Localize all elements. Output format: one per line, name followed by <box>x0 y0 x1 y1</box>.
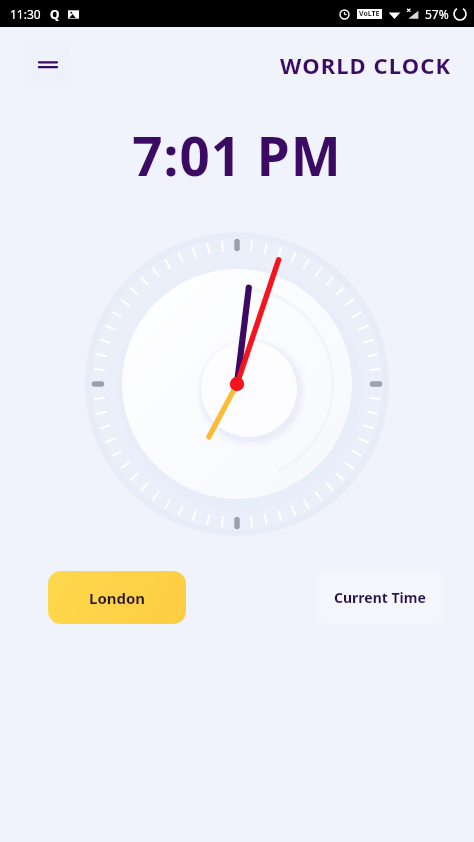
staticText: VoLTE <box>359 9 380 19</box>
button[interactable]: London <box>48 571 186 624</box>
staticText: 11:30 <box>10 6 41 22</box>
staticText: Current Time <box>334 588 426 607</box>
staticText: 7:01 PM <box>0 119 474 191</box>
button[interactable]: Menu <box>25 42 71 88</box>
staticText: 57% <box>425 6 449 22</box>
staticText: London <box>89 588 146 608</box>
staticText: WORLD CLOCK <box>280 50 452 80</box>
staticText: Q <box>50 6 60 22</box>
button[interactable]: Current Time <box>316 571 444 624</box>
other: Analog clock showing 7:01 PM <box>82 229 392 539</box>
